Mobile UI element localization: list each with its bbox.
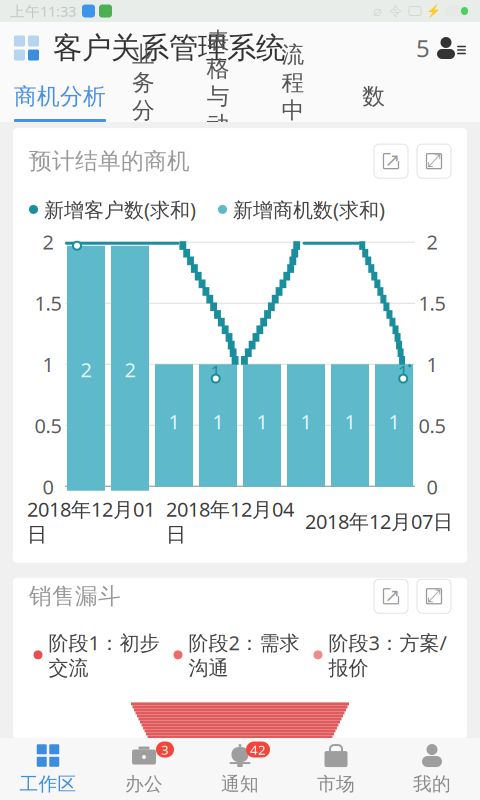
button[interactable]: 数	[330, 74, 405, 122]
staticText: ⤢	[427, 153, 441, 170]
staticText: 2	[124, 356, 135, 383]
button[interactable]: 流程中心	[256, 74, 330, 122]
staticText: 业务分析	[132, 41, 155, 152]
staticText: 2	[42, 228, 53, 255]
staticText: 1	[210, 359, 221, 384]
staticText: 0.5	[34, 412, 61, 439]
staticText: 流程中心	[281, 41, 304, 152]
button[interactable]: 在线人数 5	[402, 22, 480, 74]
staticText: 1	[42, 351, 53, 377]
staticText: 预计结单的商机	[29, 147, 190, 175]
staticText: 1	[256, 408, 267, 435]
staticText: 数	[362, 83, 385, 110]
staticText: 1.5	[34, 290, 61, 316]
staticText: 1	[212, 408, 223, 435]
staticText: 客户关系管理系统	[53, 30, 285, 66]
staticText: 1	[426, 351, 437, 377]
staticText: 5	[416, 32, 430, 64]
staticText: 3	[161, 741, 169, 758]
button[interactable]: 全屏显示	[417, 144, 451, 178]
button[interactable]: 商机分析	[0, 74, 106, 122]
button[interactable]: 业务分析	[106, 74, 181, 122]
button[interactable]: 工作区	[0, 738, 96, 800]
staticText: 42	[250, 741, 266, 758]
staticText: 通知	[221, 772, 259, 795]
staticText: 1.5	[418, 290, 445, 316]
staticText: ↗	[384, 585, 400, 606]
staticText: 销售漏斗	[29, 582, 121, 610]
button[interactable]: 42	[192, 738, 288, 800]
button[interactable]: 在新窗口打开销售漏斗	[374, 579, 408, 613]
button[interactable]: 表格与动态	[181, 74, 256, 122]
staticText: 0	[42, 473, 53, 500]
staticText: 0.5	[418, 412, 445, 439]
staticText: 市场	[317, 772, 355, 795]
button[interactable]: 市场	[288, 738, 384, 800]
staticText: 0	[426, 473, 437, 500]
staticText: 上午11:33	[10, 1, 76, 21]
staticText: 2	[426, 228, 437, 255]
staticText: 我的	[413, 772, 451, 795]
staticText: 1	[168, 408, 179, 435]
staticText: 新增客户数(求和)	[44, 196, 196, 223]
staticText: 工作区	[19, 772, 76, 795]
staticText: 1	[300, 408, 311, 435]
staticText: 阶段3：方案/报价	[328, 629, 446, 680]
staticText: 1	[344, 408, 355, 435]
staticText: 表格与动态	[207, 27, 230, 166]
staticText: ⚡	[426, 4, 441, 18]
staticText: 办公	[125, 772, 163, 795]
staticText: 商机分析	[14, 83, 106, 110]
button[interactable]: 应用菜单	[0, 22, 53, 74]
staticText: 2	[80, 356, 91, 383]
staticText: 令	[389, 3, 402, 19]
staticText: 1	[398, 359, 409, 384]
button[interactable]: 3	[96, 738, 192, 800]
staticText: 阶段2：需求沟通	[188, 629, 299, 680]
button[interactable]: 我的	[384, 738, 480, 800]
staticText: ⌀	[373, 3, 382, 19]
staticText: 新增商机数(求和)	[233, 196, 385, 223]
staticText: 2018年12月01日	[27, 496, 155, 547]
button[interactable]: 在新窗口打开	[374, 144, 408, 178]
staticText: ⤢	[427, 588, 441, 605]
staticText: 阶段1：初步交流	[48, 629, 159, 680]
button[interactable]: 全屏显示销售漏斗	[417, 579, 451, 613]
staticText: ↗	[384, 150, 400, 171]
staticText: 2018年12月04日	[166, 496, 294, 547]
staticText: 2018年12月07日	[305, 508, 453, 535]
staticText: 1	[388, 408, 399, 435]
